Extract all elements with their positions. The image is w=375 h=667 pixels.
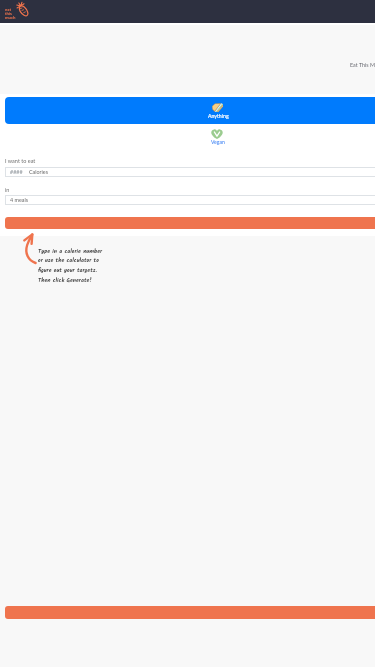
staticText: Eat This Much xyxy=(350,62,375,68)
button[interactable]: Eat This Much home xyxy=(4,1,32,21)
staticText: Vegan xyxy=(211,139,225,145)
staticText: this xyxy=(5,11,13,16)
staticText: eat xyxy=(5,7,12,12)
staticText: Anything xyxy=(208,113,229,119)
staticText: Calories xyxy=(29,169,49,175)
button[interactable]: Anything xyxy=(5,97,375,124)
button[interactable]: #### xyxy=(5,167,375,177)
staticText: I want to eat xyxy=(5,158,36,165)
staticText: in xyxy=(5,187,10,194)
button[interactable]: Generate xyxy=(5,217,375,229)
button[interactable]: Generate meal plan xyxy=(5,606,375,619)
staticText: much xyxy=(5,15,16,20)
button[interactable]: Vegan xyxy=(208,128,226,145)
staticText: 4 meals xyxy=(10,197,29,203)
staticText: Type in a calorie number or use the calc… xyxy=(38,247,103,286)
button[interactable]: 4 meals xyxy=(5,195,375,205)
staticText: #### xyxy=(10,169,23,175)
